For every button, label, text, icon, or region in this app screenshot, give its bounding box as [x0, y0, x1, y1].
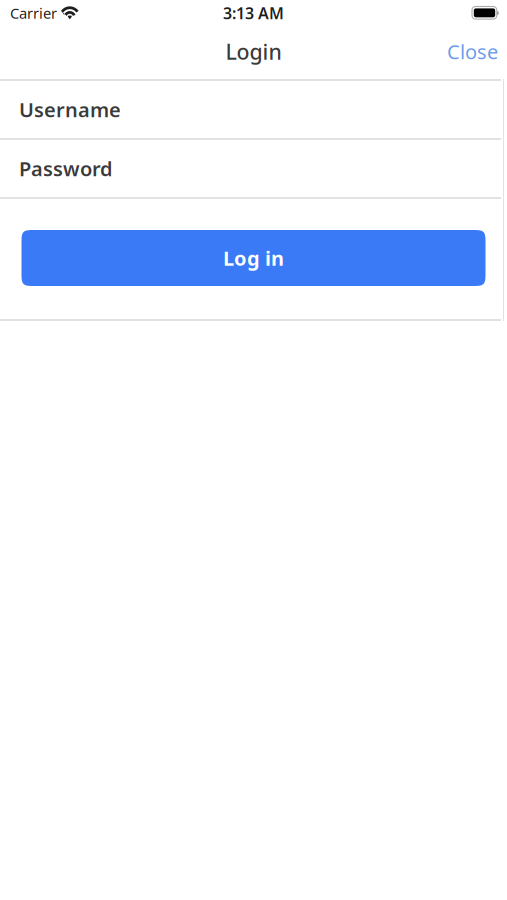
button[interactable]: Username — [0, 81, 507, 138]
staticText: Login — [225, 37, 281, 66]
staticText: 3:13 AM — [223, 2, 284, 24]
staticText: Close — [447, 38, 498, 65]
button[interactable]: Password — [0, 140, 507, 197]
staticText: Carrier — [10, 3, 57, 23]
button[interactable]: Close — [435, 30, 507, 75]
staticText: Username — [19, 96, 121, 123]
staticText: Log in — [223, 245, 284, 271]
button[interactable]: Log in — [21, 230, 485, 286]
staticText: Password — [19, 155, 113, 182]
